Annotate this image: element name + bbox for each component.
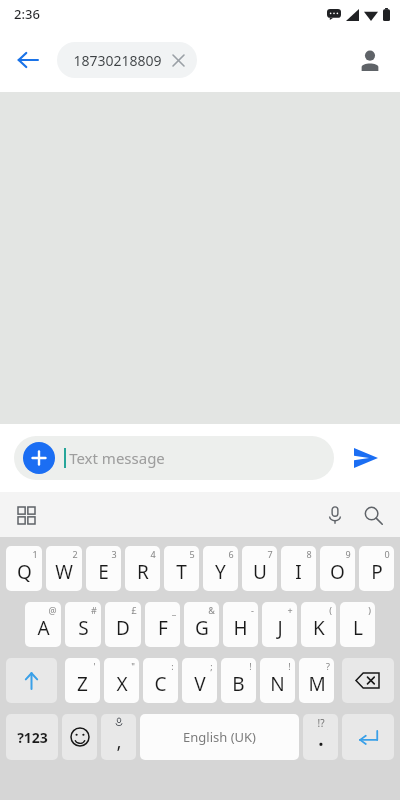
- staticText: @: [48, 604, 57, 616]
- button[interactable]: 6: [203, 546, 238, 591]
- staticText: !?: [317, 716, 325, 730]
- staticText: I: [295, 559, 302, 585]
- button[interactable]: Back: [8, 40, 48, 80]
- staticText: English (UK): [183, 728, 256, 746]
- staticText: R: [137, 559, 149, 585]
- staticText: ;: [210, 660, 213, 672]
- button[interactable]: +: [262, 602, 297, 647]
- staticText: 7: [267, 548, 273, 560]
- staticText: ?123: [17, 728, 48, 747]
- staticText: 8: [306, 548, 312, 560]
- button[interactable]: _: [145, 602, 180, 647]
- staticText: 1: [32, 548, 38, 560]
- staticText: -: [251, 604, 254, 616]
- button[interactable]: ?123: [6, 714, 58, 760]
- staticText: A: [37, 615, 50, 641]
- button[interactable]: 1: [6, 546, 42, 591]
- staticText: ": [131, 660, 135, 672]
- button[interactable]: 2: [46, 546, 82, 591]
- staticText: O: [330, 559, 345, 585]
- button[interactable]: 9: [320, 546, 355, 591]
- staticText: U: [253, 559, 267, 585]
- button[interactable]: ;: [182, 658, 217, 703]
- button[interactable]: ": [104, 658, 139, 703]
- staticText: ): [368, 604, 371, 616]
- staticText: 5: [189, 548, 195, 560]
- staticText: 9: [345, 548, 351, 560]
- button[interactable]: ': [65, 658, 100, 703]
- staticText: D: [116, 615, 130, 641]
- button[interactable]: 3: [86, 546, 121, 591]
- button[interactable]: Shift: [6, 658, 57, 703]
- staticText: 2:36: [14, 5, 40, 23]
- button[interactable]: Add attachment: [14, 436, 334, 480]
- staticText: ?: [326, 660, 330, 672]
- staticText: K: [313, 615, 325, 641]
- button[interactable]: 0: [359, 546, 394, 591]
- button[interactable]: &: [184, 602, 219, 647]
- staticText: £: [131, 604, 137, 616]
- button[interactable]: !: [221, 658, 256, 703]
- staticText: P: [371, 559, 383, 585]
- staticText: H: [233, 615, 248, 641]
- button[interactable]: #: [65, 602, 101, 647]
- staticText: 18730218809: [73, 51, 162, 70]
- button[interactable]: Keyboard apps: [8, 497, 44, 533]
- staticText: J: [277, 615, 283, 641]
- staticText: S: [78, 615, 89, 641]
- button[interactable]: Enter: [342, 714, 394, 760]
- button[interactable]: -: [223, 602, 258, 647]
- staticText: 6: [228, 548, 234, 560]
- staticText: Q: [17, 559, 32, 585]
- staticText: B: [232, 671, 245, 697]
- button[interactable]: ): [340, 602, 375, 647]
- staticText: Z: [77, 671, 88, 697]
- staticText: E: [98, 559, 109, 585]
- staticText: F: [158, 615, 168, 641]
- button[interactable]: 7: [242, 546, 277, 591]
- button[interactable]: Add attachment: [23, 442, 55, 474]
- staticText: !: [249, 660, 252, 672]
- button[interactable]: English (UK): [140, 714, 299, 760]
- button[interactable]: £: [105, 602, 141, 647]
- button[interactable]: Voice input: [316, 496, 354, 534]
- staticText: T: [176, 559, 187, 585]
- button[interactable]: !: [260, 658, 295, 703]
- staticText: ': [93, 660, 96, 672]
- staticText: .: [318, 726, 324, 752]
- button[interactable]: Emoji: [62, 714, 97, 760]
- button[interactable]: Search: [354, 496, 392, 534]
- staticText: C: [154, 671, 167, 697]
- button[interactable]: Contact details: [350, 40, 390, 80]
- button[interactable]: 4: [125, 546, 160, 591]
- button[interactable]: @: [25, 602, 61, 647]
- staticText: #: [91, 604, 97, 616]
- button[interactable]: :: [143, 658, 178, 703]
- staticText: _: [172, 604, 176, 616]
- staticText: M: [308, 671, 326, 697]
- button[interactable]: 5: [164, 546, 199, 591]
- button[interactable]: 18730218809: [57, 42, 197, 78]
- button[interactable]: 8: [281, 546, 316, 591]
- staticText: W: [55, 559, 73, 585]
- button[interactable]: ,: [101, 714, 136, 760]
- staticText: &: [208, 604, 215, 616]
- staticText: :: [171, 660, 174, 672]
- button[interactable]: ?: [299, 658, 334, 703]
- button[interactable]: !?: [303, 714, 338, 760]
- staticText: Text message: [69, 448, 165, 468]
- staticText: 2: [72, 548, 78, 560]
- staticText: V: [194, 671, 206, 697]
- staticText: X: [116, 671, 128, 697]
- staticText: Y: [215, 559, 226, 585]
- button[interactable]: Backspace: [342, 658, 394, 703]
- staticText: G: [195, 615, 209, 641]
- staticText: N: [270, 671, 285, 697]
- staticText: L: [353, 615, 363, 641]
- staticText: +: [287, 604, 293, 616]
- button[interactable]: (: [301, 602, 336, 647]
- staticText: !: [288, 660, 291, 672]
- staticText: 0: [384, 548, 390, 560]
- button[interactable]: Send: [344, 436, 388, 480]
- staticText: 4: [150, 548, 156, 560]
